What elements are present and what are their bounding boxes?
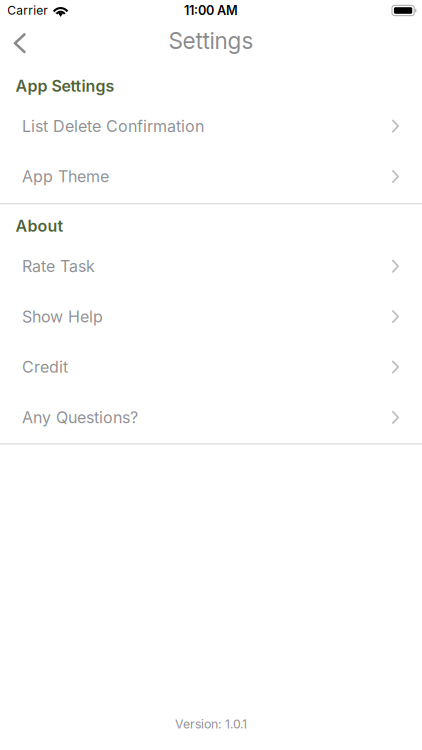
staticText: Rate Task — [22, 256, 95, 276]
button[interactable]: Show Help — [0, 291, 422, 342]
staticText: About — [15, 216, 63, 236]
button[interactable]: App Theme — [0, 151, 422, 202]
staticText: App Settings — [15, 76, 114, 96]
staticText: Version: 1.0.1 — [175, 717, 247, 731]
staticText: Any Questions? — [22, 408, 138, 427]
button[interactable]: Rate Task — [0, 241, 422, 291]
staticText: Carrier — [7, 3, 48, 18]
staticText: Settings — [168, 27, 253, 54]
staticText: Show Help — [22, 307, 103, 326]
button[interactable]: Back — [0, 21, 42, 57]
button[interactable]: Any Questions? — [0, 392, 422, 443]
staticText: Credit — [22, 357, 68, 377]
button[interactable]: List Delete Confirmation — [0, 101, 422, 151]
staticText: App Theme — [22, 167, 109, 186]
staticText: 11:00 AM — [184, 3, 238, 18]
staticText: List Delete Confirmation — [22, 116, 204, 136]
button[interactable]: Credit — [0, 342, 422, 392]
